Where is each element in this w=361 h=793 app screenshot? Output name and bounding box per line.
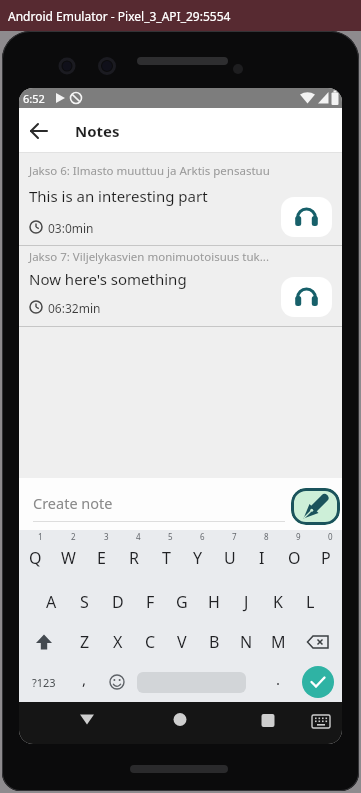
staticText: Now here's something	[29, 269, 187, 289]
button[interactable]	[294, 622, 342, 662]
staticText: Android Emulator - Pixel_3_API_29:5554	[8, 8, 231, 24]
button[interactable]: ,	[68, 662, 101, 702]
staticText: 3	[104, 531, 109, 542]
staticText: T	[162, 547, 171, 569]
staticText: N	[240, 631, 253, 653]
staticText: Notes	[75, 121, 120, 141]
button[interactable]: I	[246, 530, 278, 580]
staticText: This is an interesting part	[29, 186, 208, 206]
button[interactable]: M	[262, 622, 294, 662]
button[interactable]	[254, 706, 282, 738]
staticText: J	[244, 591, 249, 613]
staticText: M	[271, 631, 286, 653]
button[interactable]: Jakso 6: Ilmasto muuttuu ja Arktis pensa…	[19, 153, 342, 246]
button[interactable]: Q	[19, 530, 52, 580]
staticText: B	[209, 631, 220, 653]
staticText: V	[177, 631, 187, 653]
button[interactable]: D	[101, 582, 134, 622]
staticText: P	[321, 547, 331, 569]
staticText: W	[61, 547, 76, 569]
staticText: 2	[71, 531, 76, 542]
staticText: R	[129, 547, 139, 569]
staticText: K	[273, 591, 283, 613]
button[interactable]: P	[310, 530, 342, 580]
button[interactable]: E	[85, 530, 118, 580]
button[interactable]: G	[166, 582, 198, 622]
button[interactable]	[101, 662, 133, 702]
staticText: Z	[80, 631, 90, 653]
staticText: Jakso 6: Ilmasto muuttuu ja Arktis pensa…	[29, 163, 270, 179]
button[interactable]: Z	[68, 622, 101, 662]
staticText: X	[113, 631, 123, 653]
staticText: I	[259, 547, 265, 569]
button[interactable]: A	[35, 582, 68, 622]
button[interactable]: .	[262, 662, 294, 702]
button[interactable]: V	[166, 622, 198, 662]
staticText: 8	[264, 531, 269, 542]
button[interactable]	[309, 708, 333, 736]
button[interactable]: X	[101, 622, 134, 662]
button[interactable]: R	[118, 530, 150, 580]
button[interactable]	[19, 622, 68, 662]
staticText: .	[276, 669, 281, 689]
staticText: Y	[193, 547, 203, 569]
button[interactable]: Y	[182, 530, 214, 580]
button[interactable]: O	[278, 530, 310, 580]
button[interactable]: K	[262, 582, 294, 622]
staticText: 06:32min	[48, 300, 101, 316]
button[interactable]: B	[198, 622, 230, 662]
button[interactable]: N	[230, 622, 262, 662]
button[interactable]: T	[150, 530, 182, 580]
button[interactable]	[73, 706, 101, 738]
button[interactable]: W	[52, 530, 85, 580]
staticText: 5	[168, 531, 173, 542]
staticText: U	[224, 547, 236, 569]
staticText: Jakso 7: Viljelykasvien monimuotoisuus t…	[29, 249, 269, 265]
staticText: 03:0min	[48, 220, 94, 236]
staticText: S	[80, 591, 89, 613]
staticText: 9	[296, 531, 301, 542]
button[interactable]: S	[68, 582, 101, 622]
staticText: L	[306, 591, 315, 613]
staticText: 7	[232, 531, 237, 542]
staticText: Create note	[33, 493, 113, 513]
staticText: ?123	[32, 675, 56, 690]
staticText: 6	[200, 531, 205, 542]
button[interactable]	[281, 277, 332, 317]
button[interactable]	[133, 662, 262, 702]
button[interactable]: J	[230, 582, 262, 622]
button[interactable]	[27, 119, 51, 143]
button[interactable]: Jakso 7: Viljelykasvien monimuotoisuus t…	[19, 246, 342, 327]
staticText: D	[112, 591, 124, 613]
button[interactable]: L	[294, 582, 326, 622]
staticText: A	[46, 591, 57, 613]
staticText: G	[176, 591, 188, 613]
staticText: H	[208, 591, 220, 613]
button[interactable]	[166, 706, 194, 738]
staticText: 0	[328, 531, 333, 542]
staticText: Q	[29, 547, 42, 569]
button[interactable]: Create note	[19, 478, 342, 530]
button[interactable]: U	[214, 530, 246, 580]
button[interactable]: H	[198, 582, 230, 622]
button[interactable]	[291, 488, 340, 525]
staticText: C	[145, 631, 156, 653]
staticText: F	[146, 591, 155, 613]
staticText: 4	[136, 531, 141, 542]
staticText: ,	[82, 669, 87, 689]
button[interactable]: C	[134, 622, 166, 662]
button[interactable]: F	[134, 582, 166, 622]
button[interactable]	[294, 662, 342, 702]
staticText: 1	[38, 531, 43, 542]
staticText: E	[97, 547, 106, 569]
staticText: 6:52	[23, 91, 45, 106]
button[interactable]: ?123	[19, 662, 68, 702]
staticText: O	[288, 547, 301, 569]
button[interactable]	[281, 197, 332, 237]
